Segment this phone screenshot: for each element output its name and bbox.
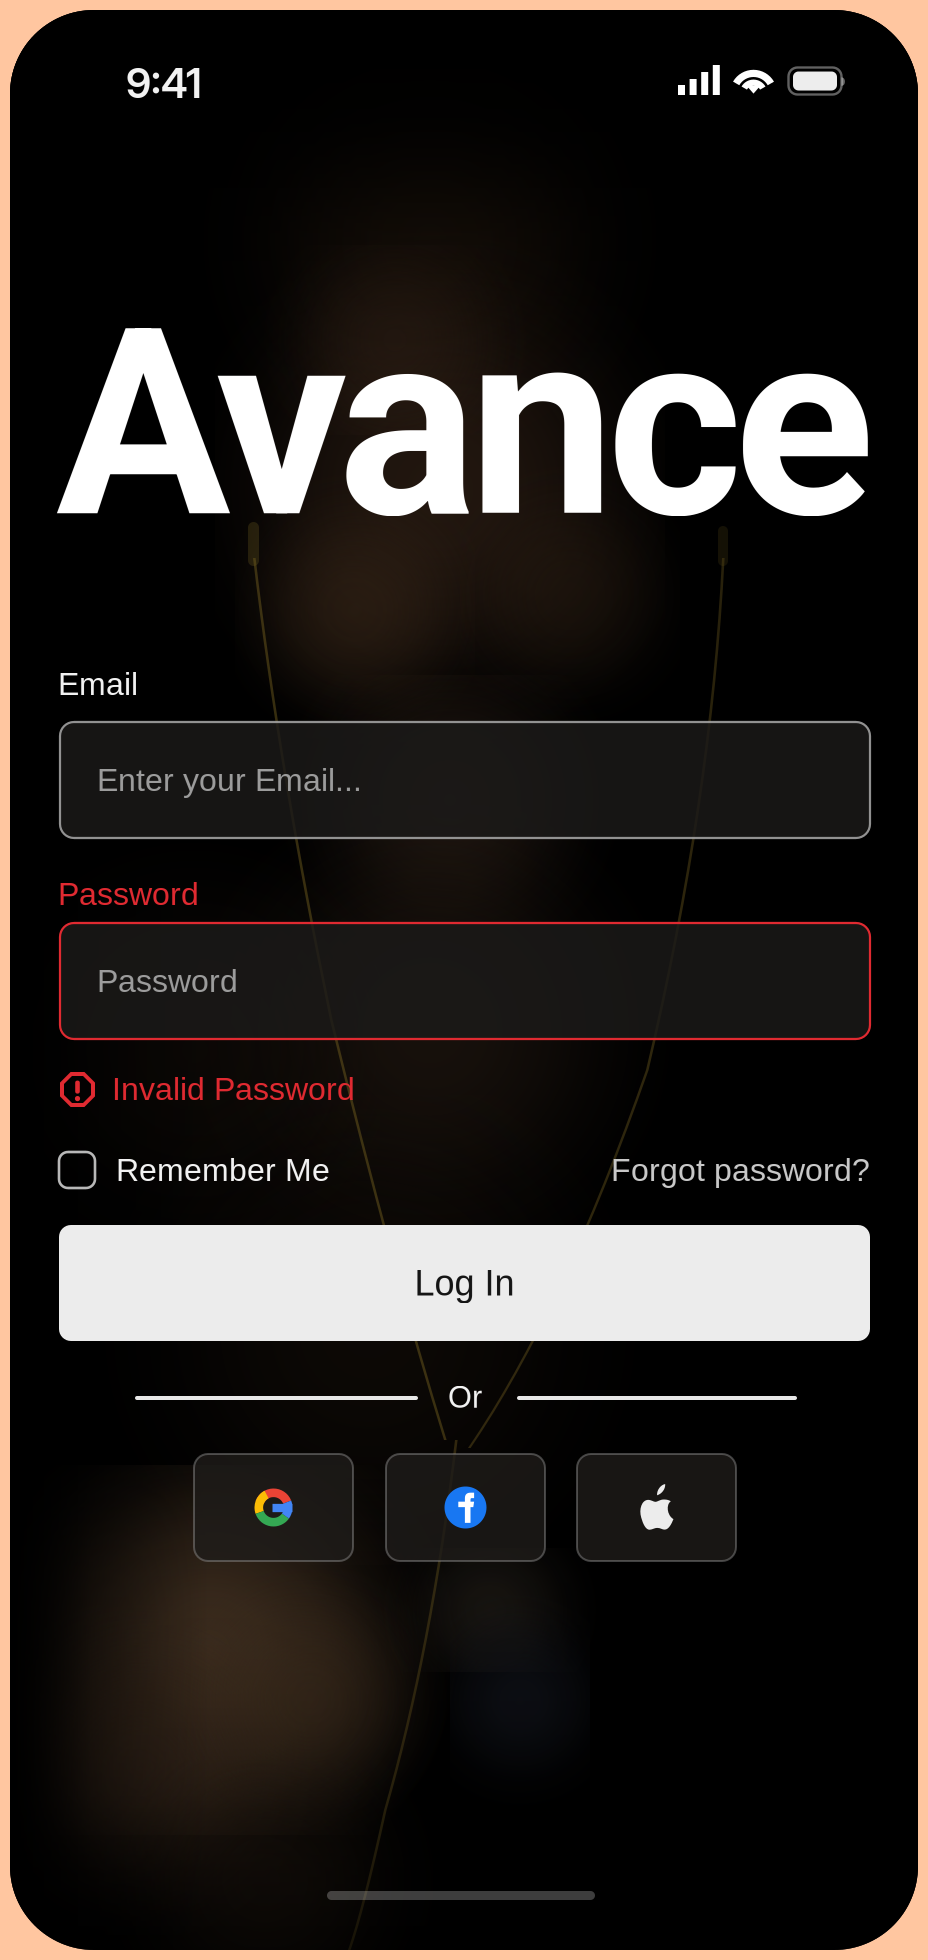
staticText: Forgot password? (611, 1152, 870, 1188)
button[interactable]: Sign in with Google (194, 1454, 353, 1561)
button[interactable]: Log In (59, 1225, 870, 1341)
button[interactable]: Forgot password? (610, 1146, 870, 1194)
button[interactable]: Sign in with Apple (577, 1454, 736, 1561)
staticText: Password (58, 876, 199, 912)
staticText: Invalid Password (112, 1071, 355, 1107)
staticText: Log In (414, 1263, 514, 1303)
staticText: Remember Me (116, 1152, 330, 1188)
staticText: Enter your Email... (97, 762, 362, 798)
button[interactable]: Enter your Email... (60, 722, 870, 838)
staticText: Password (97, 963, 238, 999)
staticText: 9:41 (126, 58, 202, 108)
button[interactable]: Password (60, 923, 870, 1039)
staticText: Or (448, 1380, 482, 1414)
staticText: Avance (56, 272, 874, 577)
button[interactable]: Remember Me (59, 1146, 339, 1194)
staticText: Email (58, 666, 138, 702)
button[interactable]: Sign in with Facebook (386, 1454, 545, 1561)
